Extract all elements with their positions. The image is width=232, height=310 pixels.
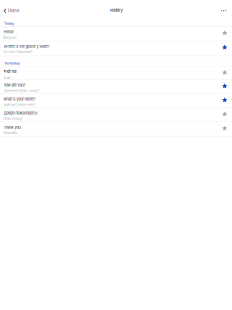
staticText: Chào mừng! [3, 117, 22, 121]
staticText: Hello! [3, 30, 13, 34]
button[interactable]: Home [0, 7, 22, 15]
staticText: Yesterday [4, 61, 20, 65]
staticText: History [109, 8, 122, 13]
button[interactable]: Thank you. [0, 122, 232, 136]
button[interactable]: Where is the grocery store? [0, 41, 232, 56]
staticText: Where is the grocery store? [3, 44, 49, 49]
staticText: Home [8, 8, 19, 13]
button[interactable]: how are you? [0, 80, 232, 93]
staticText: how are you? [3, 83, 25, 87]
staticText: Спасибо. [3, 131, 18, 135]
staticText: Добро пожаловать! [3, 111, 37, 115]
staticText: Où est l'épicerie? [3, 50, 32, 54]
staticText: Comment allez-vous? [3, 89, 39, 93]
button[interactable]: मैं खो गया [0, 67, 232, 79]
staticText: मैं खो [3, 76, 10, 80]
staticText: what is your name? [3, 97, 35, 101]
button[interactable]: Добро пожаловать! [0, 108, 232, 122]
staticText: Bonjour! [3, 35, 16, 39]
staticText: quel est votre nom? [3, 103, 35, 107]
staticText: Today [4, 21, 14, 26]
staticText: Thank you. [3, 125, 21, 130]
button[interactable]: Hello! [0, 27, 232, 41]
button[interactable]: More options [217, 8, 232, 13]
button[interactable]: what is your name? [0, 94, 232, 107]
staticText: मैं खो गया [3, 69, 16, 74]
